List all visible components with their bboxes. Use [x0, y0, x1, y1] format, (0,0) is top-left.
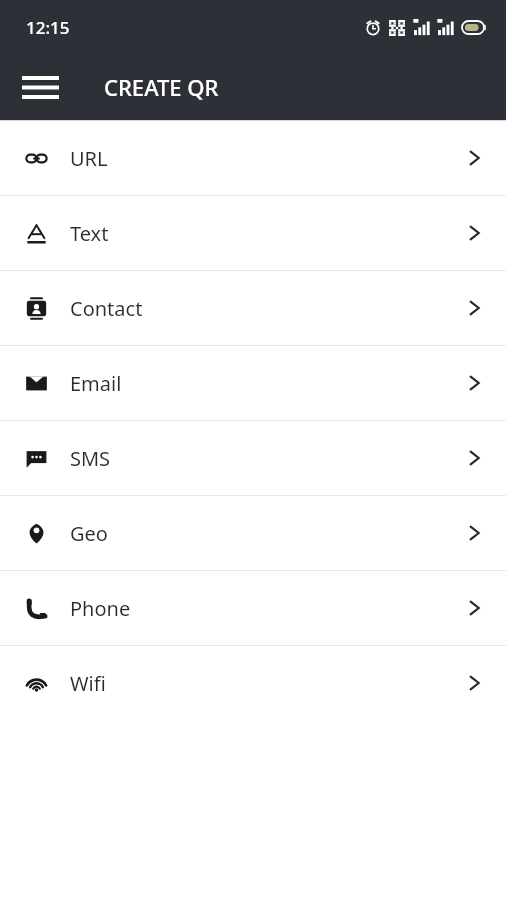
button[interactable]: Open navigation menu: [14, 61, 66, 113]
staticText: Wifi: [70, 670, 469, 697]
button[interactable]: URL: [0, 121, 506, 195]
staticText: CREATE QR: [104, 72, 219, 102]
staticText: URL: [70, 145, 469, 172]
staticText: Text: [70, 220, 469, 247]
staticText: Email: [70, 370, 469, 397]
button[interactable]: Phone: [0, 571, 506, 645]
button[interactable]: Wifi: [0, 646, 506, 720]
button[interactable]: Geo: [0, 496, 506, 570]
staticText: Phone: [70, 595, 469, 622]
staticText: Geo: [70, 520, 469, 547]
button[interactable]: Email: [0, 346, 506, 420]
button[interactable]: SMS: [0, 421, 506, 495]
staticText: Contact: [70, 295, 469, 322]
staticText: SMS: [70, 445, 469, 472]
button[interactable]: Text: [0, 196, 506, 270]
staticText: 12:15: [26, 16, 70, 39]
button[interactable]: Contact: [0, 271, 506, 345]
